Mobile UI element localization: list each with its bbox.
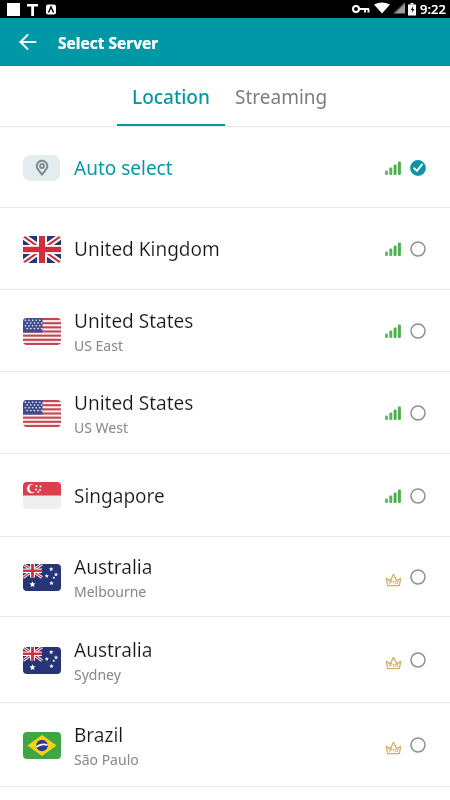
staticText: Pro (389, 578, 399, 586)
button[interactable] (12, 26, 44, 58)
button[interactable]: Streaming (225, 66, 338, 127)
staticText: Brazil (74, 722, 124, 748)
staticText: Auto select (74, 155, 173, 181)
staticText: US West (74, 418, 128, 437)
staticText: Australia (74, 637, 153, 663)
staticText: Pro (389, 746, 399, 754)
staticText: Sydney (74, 665, 121, 684)
staticText: United States (74, 390, 194, 416)
button[interactable]: Auto select (0, 127, 450, 208)
button[interactable]: United States (0, 290, 450, 372)
staticText: Streaming (235, 84, 328, 110)
staticText: São Paulo (74, 750, 139, 769)
button[interactable]: Australia (0, 617, 450, 703)
staticText: Melbourne (74, 582, 147, 601)
button[interactable]: Singapore (0, 454, 450, 537)
staticText: US East (74, 336, 123, 355)
staticText: United Kingdom (74, 236, 220, 262)
staticText: Singapore (74, 483, 165, 509)
staticText: Australia (74, 554, 153, 580)
staticText: United States (74, 308, 194, 334)
staticText: 9:22 (420, 0, 446, 18)
button[interactable]: Location (117, 66, 225, 127)
button[interactable]: Brazil (0, 703, 450, 787)
staticText: Pro (389, 661, 399, 669)
button[interactable]: Australia (0, 537, 450, 617)
staticText: Location (132, 84, 210, 110)
button[interactable]: United States (0, 372, 450, 454)
button[interactable]: United Kingdom (0, 208, 450, 290)
staticText: Select Server (58, 32, 159, 53)
